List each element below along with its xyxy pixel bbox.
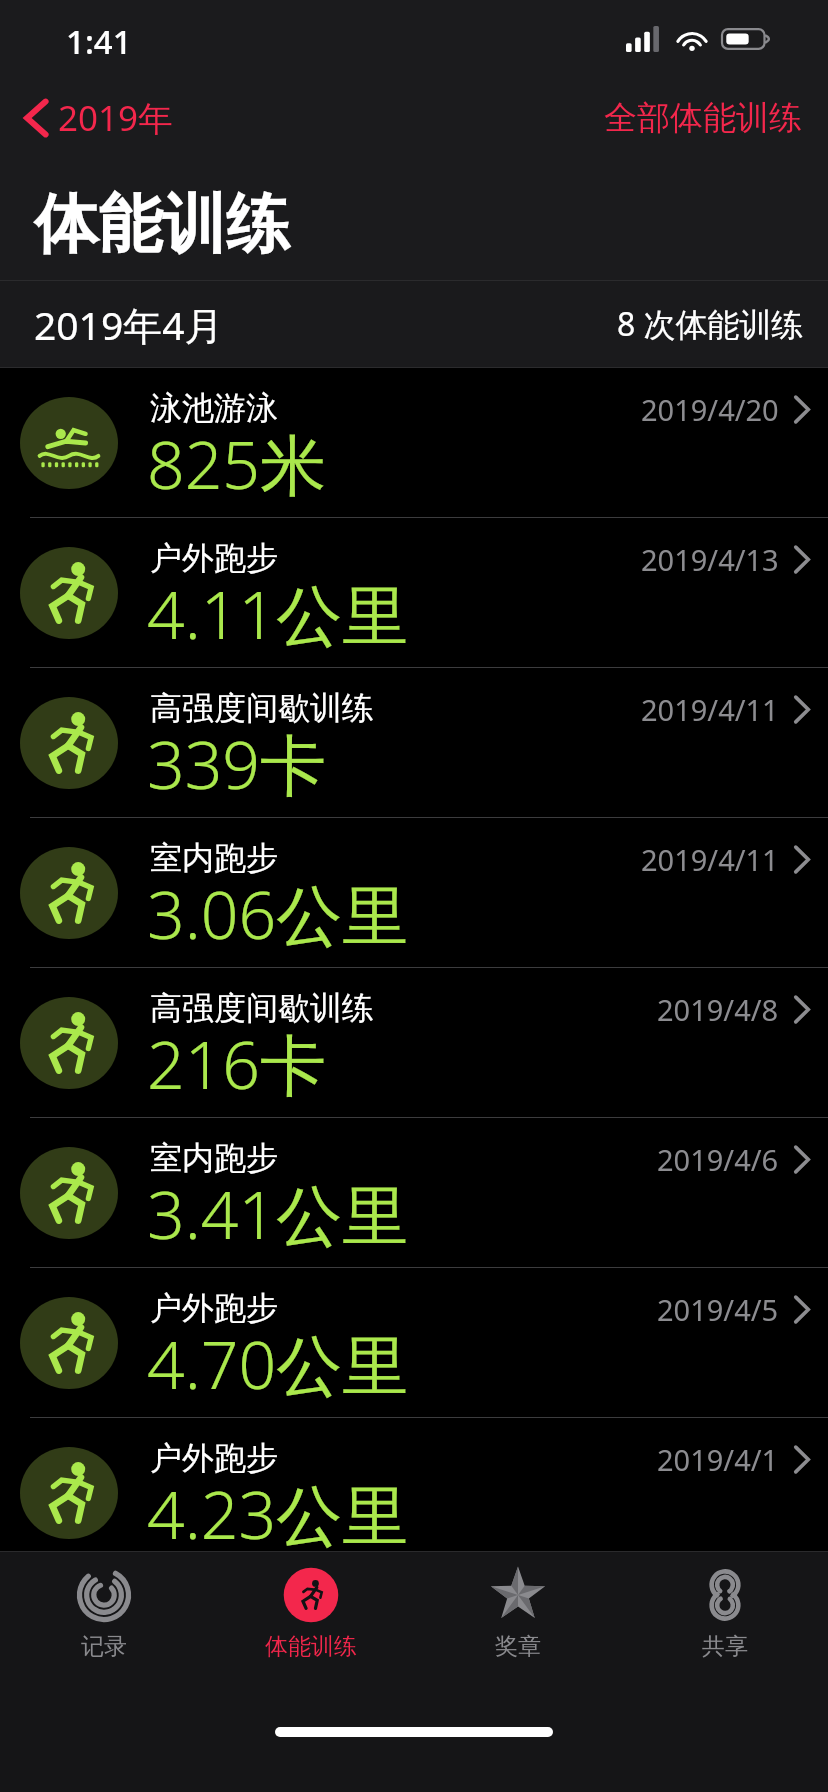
staticText: 4.23公里 <box>147 1468 409 1558</box>
staticText: 339卡 <box>147 718 327 808</box>
button[interactable]: 全部体能训练 <box>592 87 814 149</box>
staticText: 825米 <box>147 418 327 508</box>
button[interactable]: 体能训练 <box>207 1552 414 1661</box>
staticText: 2019/4/11 <box>641 690 779 729</box>
staticText: 2019/4/20 <box>641 390 779 429</box>
staticText: 高强度间歇训练 <box>150 688 374 728</box>
staticText: 体能训练 <box>34 184 290 265</box>
staticText: 4.11公里 <box>147 568 409 658</box>
staticText: 8 次体能训练 <box>617 302 804 346</box>
staticText: 室内跑步 <box>150 838 278 878</box>
button[interactable]: 室内跑步 <box>0 1118 828 1267</box>
staticText: 2019/4/11 <box>641 840 779 879</box>
staticText: 2019/4/6 <box>657 1140 779 1179</box>
staticText: 全部体能训练 <box>604 97 802 139</box>
button[interactable]: 高强度间歇训练 <box>0 968 828 1117</box>
staticText: 2019/4/1 <box>657 1440 779 1479</box>
staticText: 2019年 <box>58 94 174 142</box>
staticText: 共享 <box>702 1632 748 1661</box>
staticText: 1:41 <box>66 19 132 64</box>
button[interactable]: 高强度间歇训练 <box>0 668 828 817</box>
staticText: 2019年4月 <box>34 298 224 351</box>
staticText: 户外跑步 <box>150 538 278 578</box>
staticText: 4.70公里 <box>147 1318 409 1408</box>
staticText: 2019/4/13 <box>641 540 779 579</box>
button[interactable]: 奖章 <box>414 1552 621 1661</box>
staticText: 泳池游泳 <box>150 388 278 428</box>
staticText: 体能训练 <box>265 1632 357 1661</box>
button[interactable]: 室内跑步 <box>0 818 828 967</box>
staticText: 3.06公里 <box>147 868 409 958</box>
staticText: 室内跑步 <box>150 1138 278 1178</box>
button[interactable]: 共享 <box>621 1552 828 1661</box>
staticText: 户外跑步 <box>150 1288 278 1328</box>
staticText: 高强度间歇训练 <box>150 988 374 1028</box>
button[interactable]: 返回 2019年 <box>14 84 184 152</box>
staticText: 奖章 <box>495 1632 541 1661</box>
staticText: 记录 <box>81 1632 127 1661</box>
button[interactable]: 户外跑步 <box>0 1418 828 1567</box>
staticText: 3.41公里 <box>147 1168 409 1258</box>
staticText: 户外跑步 <box>150 1438 278 1478</box>
staticText: 216卡 <box>147 1018 327 1108</box>
button[interactable]: 泳池游泳 <box>0 368 828 517</box>
button[interactable]: 户外跑步 <box>0 518 828 667</box>
staticText: 2019/4/8 <box>657 990 779 1029</box>
staticText: 2019/4/5 <box>657 1290 779 1329</box>
button[interactable]: 户外跑步 <box>0 1268 828 1417</box>
button[interactable]: 记录 <box>0 1552 207 1661</box>
